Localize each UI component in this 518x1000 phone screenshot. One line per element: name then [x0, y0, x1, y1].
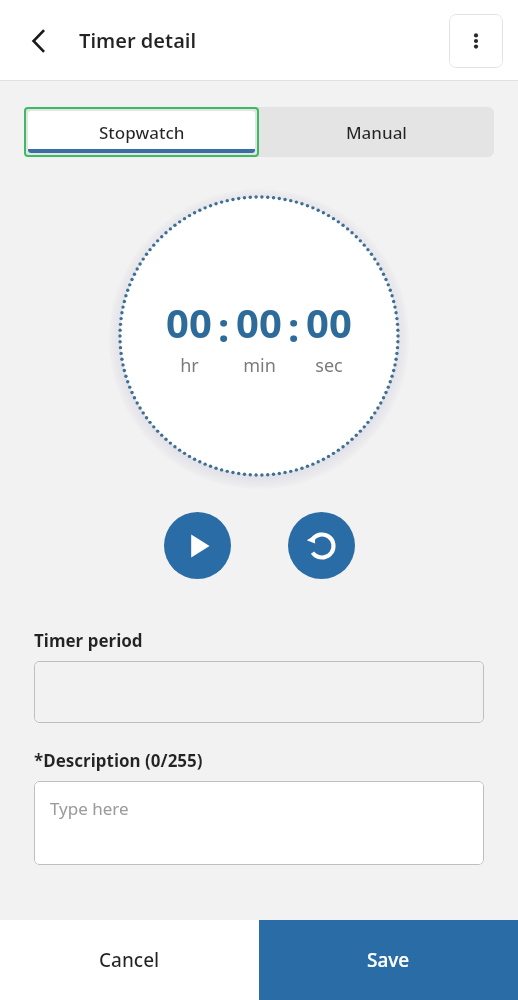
staticText: hr — [180, 353, 199, 378]
staticText: min — [243, 353, 276, 378]
staticText: Manual — [346, 121, 407, 144]
staticText: Save — [367, 947, 410, 973]
button[interactable]: Stopwatch — [28, 111, 255, 153]
staticText: : — [218, 299, 230, 353]
staticText: 00 — [306, 295, 352, 349]
staticText: Timer period — [34, 629, 518, 652]
staticText: *Description (0/255) — [34, 749, 518, 772]
button[interactable]: More options — [449, 14, 503, 68]
staticText: 00 — [166, 295, 212, 349]
staticText: Cancel — [99, 947, 160, 973]
button[interactable]: Type here — [34, 781, 484, 865]
staticText: sec — [315, 353, 343, 378]
staticText: 00 — [236, 295, 282, 349]
button[interactable]: Start timer — [164, 512, 231, 579]
staticText: Type here — [50, 797, 129, 820]
button[interactable] — [34, 661, 484, 723]
button[interactable]: Manual — [259, 107, 494, 157]
staticText: : — [288, 299, 300, 353]
staticText: Stopwatch — [99, 121, 185, 144]
button[interactable]: Back — [14, 16, 64, 66]
button[interactable]: Reset timer — [288, 512, 355, 579]
button[interactable]: Cancel — [0, 920, 259, 1000]
button[interactable]: Save — [259, 920, 518, 1000]
staticText: Timer detail — [79, 27, 197, 54]
